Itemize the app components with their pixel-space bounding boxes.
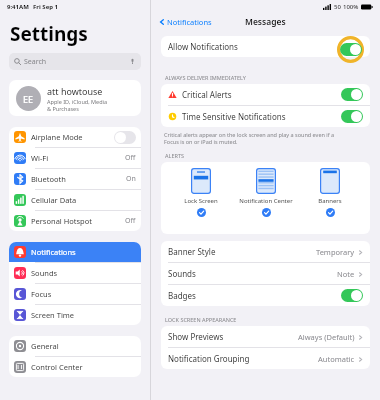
- staticText: Apple ID, iCloud, Media: [47, 98, 108, 105]
- staticText: Sounds: [168, 268, 196, 279]
- button[interactable]: Wi-Fi: [9, 148, 141, 168]
- button[interactable]: Bluetooth: [9, 169, 141, 189]
- button[interactable]: Toggle: [341, 289, 363, 302]
- staticText: Personal Hotspot: [31, 216, 92, 226]
- staticText: Automatic: [318, 354, 355, 364]
- staticText: Control Center: [31, 362, 83, 372]
- staticText: Banner Style: [168, 246, 216, 257]
- staticText: Wi-Fi: [31, 153, 49, 163]
- staticText: Notification Grouping: [168, 353, 250, 364]
- staticText: Temporary: [316, 247, 355, 257]
- staticText: ALERTS: [165, 152, 184, 159]
- staticText: LOCK SCREEN APPEARANCE: [165, 316, 237, 323]
- staticText: Focus is on or iPad is muted.: [164, 138, 238, 145]
- button[interactable]: Toggle: [341, 88, 363, 101]
- button[interactable]: Notification Center: [235, 168, 297, 217]
- staticText: & Purchases: [47, 105, 79, 112]
- staticText: ALWAYS DELIVER IMMEDIATELY: [165, 74, 246, 81]
- button[interactable]: Cellular Data: [9, 190, 141, 210]
- staticText: Bluetooth: [31, 174, 66, 184]
- staticText: Time Sensitive Notifications: [182, 111, 286, 122]
- staticText: Notifications: [31, 247, 76, 257]
- staticText: Fri Sep 1: [33, 3, 59, 11]
- staticText: Cellular Data: [31, 195, 77, 205]
- staticText: Note: [337, 269, 355, 279]
- button[interactable]: Notifications: [9, 242, 141, 262]
- button[interactable]: Focus: [9, 284, 141, 304]
- staticText: Lock Screen: [184, 197, 218, 205]
- staticText: Show Previews: [168, 331, 224, 342]
- button[interactable]: Sounds: [9, 263, 141, 283]
- button[interactable]: Toggle: [340, 43, 362, 56]
- staticText: Search: [24, 57, 47, 67]
- button[interactable]: Time Sensitive Notifications: [161, 106, 370, 127]
- button[interactable]: Allow Notifications: [161, 36, 370, 57]
- staticText: Focus: [31, 289, 52, 299]
- button[interactable]: Control Center: [9, 357, 141, 377]
- button[interactable]: Notifications: [157, 15, 214, 29]
- staticText: 100%: [343, 3, 359, 11]
- staticText: 9:41AM: [7, 3, 29, 11]
- staticText: Critical Alerts: [182, 89, 232, 100]
- button[interactable]: Personal Hotspot: [9, 211, 141, 231]
- button[interactable]: Notification Grouping: [161, 348, 370, 369]
- button[interactable]: Banners: [299, 168, 361, 217]
- staticText: Notifications: [167, 17, 212, 27]
- button[interactable]: Banner Style: [161, 241, 370, 262]
- staticText: EE: [23, 93, 34, 105]
- staticText: Off: [125, 216, 136, 226]
- staticText: Screen Time: [31, 310, 75, 320]
- staticText: 50: [334, 3, 341, 11]
- staticText: Notification Center: [239, 197, 293, 205]
- staticText: Sounds: [31, 268, 58, 278]
- button[interactable]: Show Previews: [161, 326, 370, 347]
- button[interactable]: Sounds: [161, 263, 370, 284]
- staticText: General: [31, 341, 59, 351]
- staticText: Always (Default): [298, 332, 355, 342]
- staticText: Airplane Mode: [31, 132, 83, 142]
- button[interactable]: Badges: [161, 285, 370, 306]
- button[interactable]: General: [9, 336, 141, 356]
- button[interactable]: Screen Time: [9, 305, 141, 325]
- staticText: Allow Notifications: [168, 41, 238, 52]
- staticText: att howtouse: [47, 85, 103, 97]
- staticText: On: [126, 174, 136, 184]
- button[interactable]: Search: [9, 53, 141, 70]
- staticText: Badges: [168, 290, 196, 301]
- button[interactable]: Critical Alerts: [161, 84, 370, 105]
- staticText: Settings: [10, 21, 88, 47]
- staticText: Messages: [245, 16, 286, 28]
- staticText: Off: [125, 153, 136, 163]
- button[interactable]: Airplane Mode: [9, 127, 141, 147]
- button[interactable]: Lock Screen: [170, 168, 232, 217]
- button[interactable]: Toggle: [114, 131, 136, 144]
- button[interactable]: Toggle: [341, 110, 363, 123]
- staticText: Critical alerts appear on the lock scree…: [164, 131, 335, 138]
- button[interactable]: EE: [9, 80, 141, 116]
- staticText: Banners: [318, 197, 342, 205]
